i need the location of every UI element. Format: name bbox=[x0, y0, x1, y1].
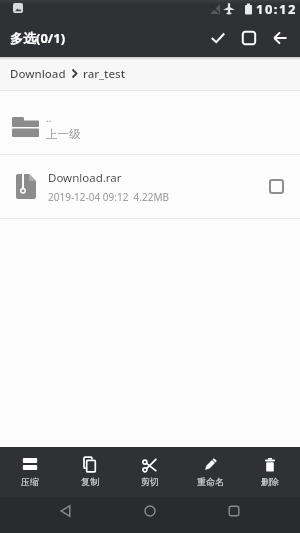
staticText: 复制 bbox=[81, 476, 99, 487]
staticText: Download bbox=[10, 66, 66, 82]
staticText: 剪切 bbox=[141, 476, 159, 487]
staticText: 删除 bbox=[261, 476, 279, 487]
staticText: 多选(0/1) bbox=[10, 29, 66, 47]
staticText: 10:12 bbox=[256, 0, 297, 18]
staticText: 重命名 bbox=[197, 476, 224, 487]
staticText: .. bbox=[46, 111, 52, 125]
staticText: 压缩 bbox=[21, 476, 39, 487]
staticText: 2019-12-04 09:12 4.22MB bbox=[48, 190, 169, 204]
staticText: 上一级 bbox=[46, 127, 81, 141]
staticText: rar_test bbox=[83, 66, 126, 82]
staticText: Download.rar bbox=[48, 170, 122, 186]
